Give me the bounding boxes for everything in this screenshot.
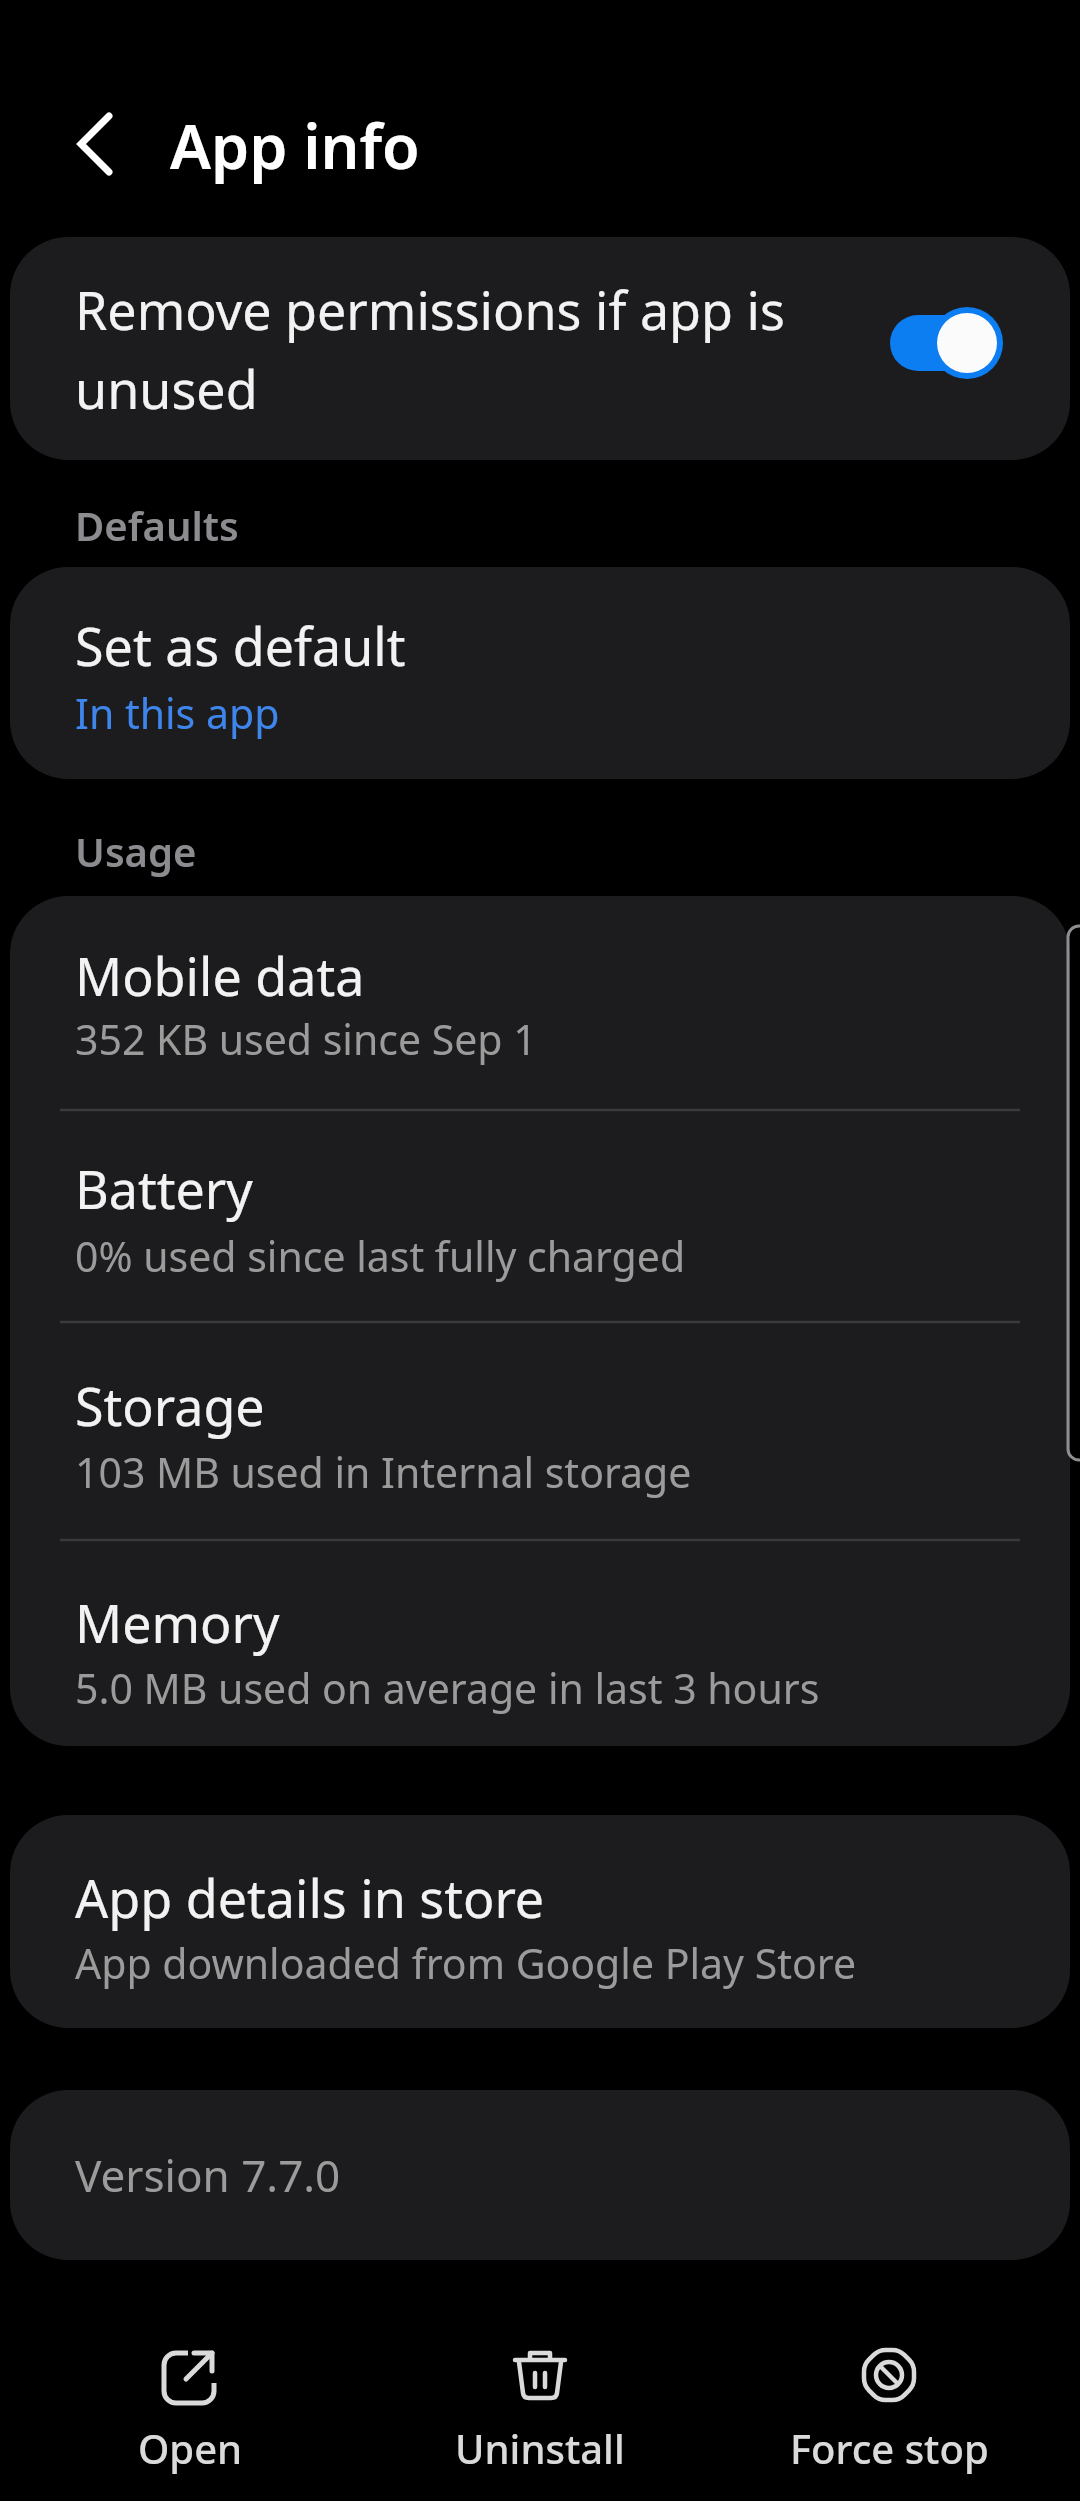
- staticText: Remove permissions if app is: [75, 274, 785, 345]
- button[interactable]: App details in store: [10, 1815, 1070, 2028]
- button[interactable]: Open: [60, 2330, 320, 2490]
- staticText: Uninstall: [455, 2421, 625, 2475]
- button[interactable]: [55, 104, 135, 184]
- staticText: Storage: [75, 1370, 265, 1441]
- staticText: Usage: [75, 824, 197, 878]
- staticText: 352 KB used since Sep 1: [75, 1011, 537, 1067]
- staticText: Memory: [75, 1587, 280, 1658]
- staticText: App details in store: [75, 1862, 545, 1933]
- button[interactable]: Remove permissions if app is: [10, 237, 1070, 460]
- staticText: unused: [75, 353, 258, 424]
- button[interactable]: Mobile data: [10, 896, 1070, 1746]
- staticText: Force stop: [790, 2421, 989, 2475]
- staticText: Mobile data: [75, 940, 365, 1011]
- staticText: 103 MB used in Internal storage: [75, 1444, 692, 1500]
- staticText: App downloaded from Google Play Store: [75, 1935, 857, 1991]
- staticText: Battery: [75, 1153, 253, 1224]
- staticText: Version 7.7.0: [75, 2145, 341, 2205]
- staticText: 5.0 MB used on average in last 3 hours: [75, 1660, 820, 1716]
- button[interactable]: Set as default: [10, 567, 1070, 779]
- staticText: In this app: [75, 685, 280, 741]
- staticText: 0% used since last fully charged: [75, 1228, 686, 1284]
- button[interactable]: Version 7.7.0: [10, 2090, 1070, 2260]
- staticText: App info: [170, 104, 420, 187]
- button[interactable]: Force stop: [759, 2330, 1019, 2490]
- staticText: Set as default: [75, 610, 406, 681]
- button[interactable]: Uninstall: [410, 2330, 670, 2490]
- staticText: Open: [138, 2421, 243, 2475]
- staticText: Defaults: [75, 498, 239, 552]
